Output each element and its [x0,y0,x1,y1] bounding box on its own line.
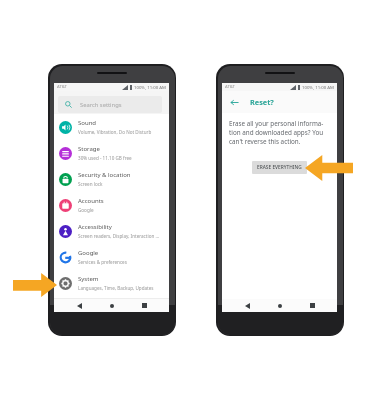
button[interactable]: Back [239,299,255,312]
staticText: Search settings [80,101,122,109]
button[interactable]: Search settings [58,96,162,113]
button[interactable]: Security & location [54,166,169,192]
button[interactable]: Google [54,244,169,270]
staticText: can't reverse this action. [229,137,301,146]
button[interactable]: Back [228,96,241,109]
button[interactable]: ERASE EVERYTHING [252,161,307,174]
button[interactable]: Sound [54,114,169,140]
staticText: ERASE EVERYTHING [257,164,302,171]
staticText: Sound [78,119,97,127]
staticText: Screen lock [78,181,103,187]
staticText: AT&T [57,84,67,90]
button[interactable]: Back [71,299,87,312]
staticText: tion and downloaded apps? You [229,128,324,137]
staticText: Accessibility [78,223,112,231]
staticText: Google [78,207,94,213]
staticText: Services & preferences [78,259,127,265]
staticText: Google [78,249,99,257]
staticText: Security & location [78,171,131,179]
button[interactable]: Home [104,299,120,312]
staticText: System [78,275,99,283]
staticText: Reset? [250,97,274,107]
button[interactable]: Accounts [54,192,169,218]
staticText: AT&T [225,84,235,90]
button[interactable]: System [54,270,169,296]
button[interactable]: Home [272,299,288,312]
staticText: 30% used - 11.10 GB free [78,155,132,161]
staticText: Volume, Vibration, Do Not Disturb [78,129,152,135]
staticText: 100%, 11:00 AM [134,84,166,90]
staticText: Erase all your personal informa- [229,119,324,128]
button[interactable]: Accessibility [54,218,169,244]
staticText: Accounts [78,197,104,205]
staticText: Storage [78,145,100,153]
button[interactable]: Storage [54,140,169,166]
button[interactable]: Recent apps [136,299,152,312]
button[interactable]: Recent apps [304,299,320,312]
staticText: Languages, Time, Backup, Updates [78,285,154,291]
staticText: Screen readers, Display, Interaction ... [78,233,160,239]
staticText: 100%, 11:00 AM [302,84,334,90]
